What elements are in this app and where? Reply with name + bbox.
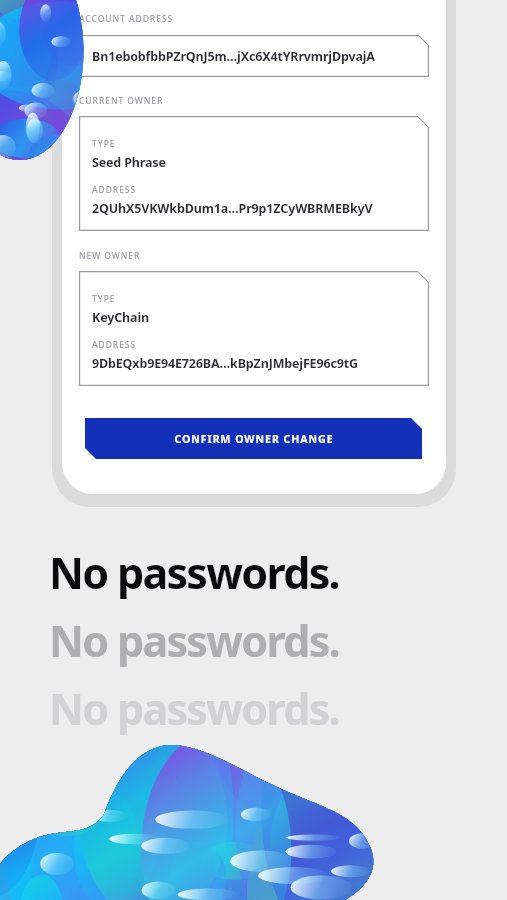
staticText: CONFIRM OWNER CHANGE: [174, 432, 334, 446]
staticText: CURRENT OWNER: [79, 95, 164, 107]
staticText: 9DbEQxb9E94E726BA…kBpZnJMbejFE96c9tG: [92, 355, 358, 372]
button[interactable]: Bn1ebobfbbPZrQnJ5m…jXc6X4tYRrvmrjDpvajA: [79, 35, 429, 77]
staticText: Bn1ebobfbbPZrQnJ5m…jXc6X4tYRrvmrjDpvajA: [92, 48, 375, 65]
staticText: KeyChain: [92, 309, 149, 326]
staticText: 2QUhX5VKWkbDum1a…Pr9p1ZCyWBRMEBkyV: [92, 200, 373, 217]
staticText: No passwords.: [49, 543, 339, 602]
button[interactable]: CONFIRM OWNER CHANGE: [85, 418, 422, 459]
staticText: ACCOUNT ADDRESS: [79, 13, 174, 25]
staticText: No passwords.: [49, 679, 339, 738]
staticText: Seed Phrase: [92, 154, 166, 171]
staticText: TYPE: [92, 293, 116, 305]
staticText: ADDRESS: [92, 184, 137, 196]
button[interactable]: TYPE: [79, 116, 429, 231]
staticText: NEW OWNER: [79, 250, 141, 262]
button[interactable]: TYPE: [79, 271, 429, 386]
staticText: ADDRESS: [92, 339, 137, 351]
staticText: TYPE: [92, 138, 116, 150]
staticText: No passwords.: [49, 611, 339, 670]
